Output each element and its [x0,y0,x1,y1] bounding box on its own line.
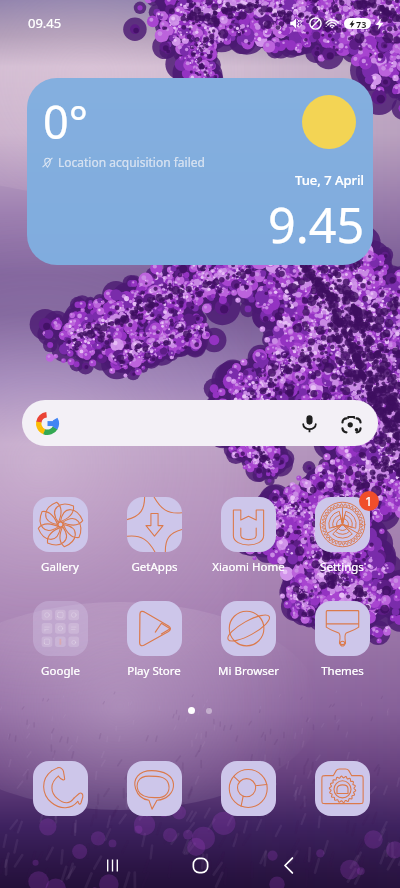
button[interactable]: Chrome [218,758,278,818]
button[interactable]: Gallery [15,490,105,575]
button[interactable]: Phone [30,758,90,818]
button[interactable]: Google [15,594,105,679]
staticText: 1 [365,492,373,510]
button[interactable]: Recents [79,842,145,888]
staticText: Xiaomi Home [212,559,285,575]
button[interactable]: Home [167,842,233,888]
button[interactable]: Messages [124,758,184,818]
button[interactable]: Camera [312,758,372,818]
button[interactable]: Xiaomi Home [203,490,293,575]
staticText: Gallery [41,559,79,575]
button[interactable]: Mi Browser [203,594,293,679]
button[interactable]: Themes [297,594,387,679]
staticText: Location acquisition failed [58,154,205,170]
button[interactable]: 1 [297,490,387,575]
staticText: GetApps [131,559,178,575]
staticText: 0° [43,91,89,152]
button[interactable]: GetApps [109,490,199,575]
button[interactable]: Voice search [22,400,378,446]
staticText: 73 [356,18,367,29]
staticText: Tue, 7 April [295,171,365,189]
staticText: Mi Browser [218,663,279,679]
staticText: 9.45 [268,191,365,257]
button[interactable]: Play Store [109,594,199,679]
button[interactable]: Google Lens [334,406,368,440]
staticText: Settings [320,559,364,575]
staticText: Google [41,663,80,679]
staticText: Play Store [127,663,181,679]
button[interactable]: 0° [27,78,373,265]
staticText: 09.45 [28,14,62,32]
button[interactable]: Back [255,842,321,888]
staticText: Themes [321,663,364,679]
button[interactable]: Voice search [292,406,326,440]
